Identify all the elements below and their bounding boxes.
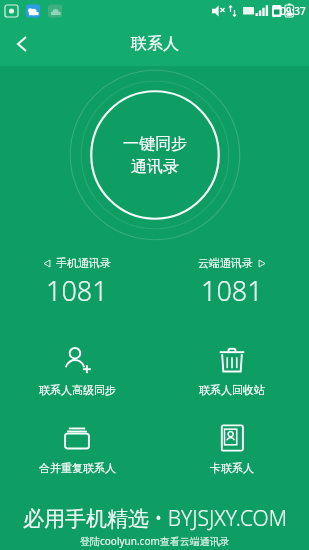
button[interactable]: 联系人回收站 xyxy=(154,339,309,401)
button[interactable]: 卡联系人 xyxy=(154,417,309,479)
staticText: 卡联系人 xyxy=(210,461,254,475)
staticText: 合并重复联系人 xyxy=(39,461,116,475)
staticText: 必用手机精选 • BYJSJXY.COM xyxy=(23,504,287,533)
staticText: 一键同步 xyxy=(123,134,187,154)
staticText: 1081 xyxy=(201,272,263,309)
staticText: 登陆coolyun.com查看云端通讯录 xyxy=(80,534,230,548)
button[interactable]: 手机通讯录 xyxy=(0,254,154,311)
staticText: 云端通讯录 xyxy=(198,256,253,270)
button[interactable]: 合并重复联系人 xyxy=(0,417,154,479)
staticText: 联系人回收站 xyxy=(199,383,265,397)
button[interactable]: 云端通讯录 xyxy=(154,254,309,311)
staticText: 通讯录 xyxy=(131,157,179,177)
staticText: 手机通讯录 xyxy=(56,256,111,270)
staticText: 1081 xyxy=(46,272,108,309)
button[interactable]: Back xyxy=(0,22,44,66)
button[interactable]: 联系人高级同步 xyxy=(0,339,154,401)
staticText: 联系人高级同步 xyxy=(39,383,116,397)
button[interactable]: 一键同步 xyxy=(80,80,230,230)
staticText: 09:37 xyxy=(280,4,306,18)
staticText: 联系人 xyxy=(131,34,179,54)
